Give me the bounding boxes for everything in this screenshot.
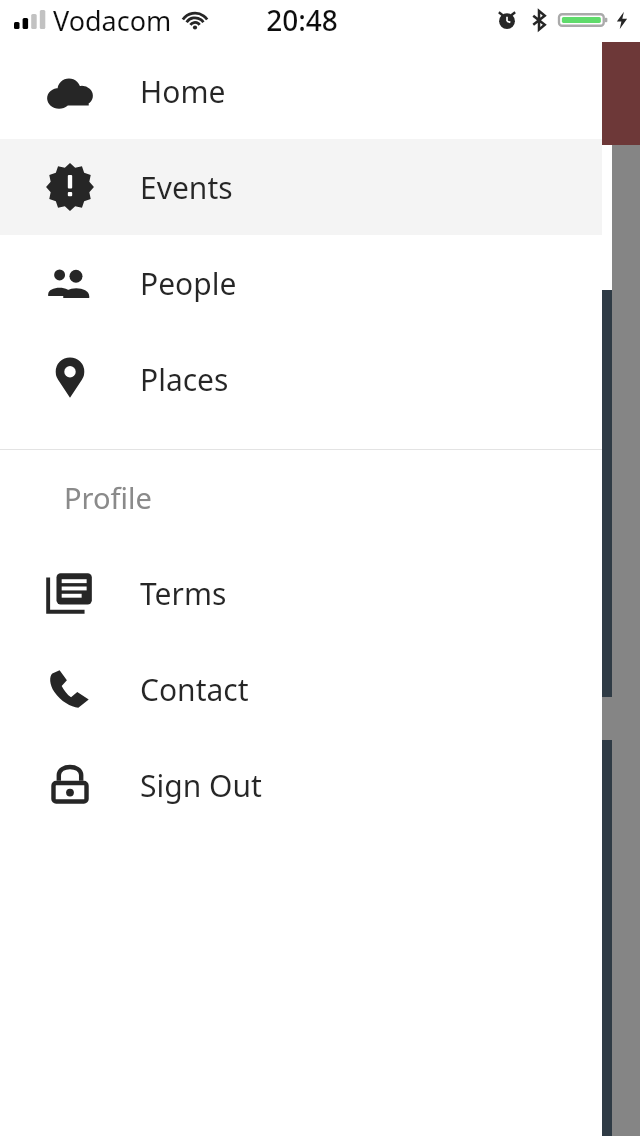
staticText: Terms — [140, 573, 227, 614]
staticText: Profile — [64, 478, 152, 517]
staticText: Vodacom — [53, 2, 172, 39]
button[interactable]: Places — [0, 331, 602, 427]
button[interactable]: Sign Out — [0, 737, 602, 833]
button[interactable]: People — [0, 235, 602, 331]
button[interactable]: Events — [0, 139, 602, 235]
staticText: Places — [140, 359, 229, 400]
staticText: Sign Out — [140, 765, 262, 806]
staticText: Events — [140, 167, 233, 208]
staticText: Contact — [140, 669, 249, 710]
button[interactable]: Terms — [0, 545, 602, 641]
button[interactable]: Home — [0, 43, 602, 139]
staticText: Home — [140, 71, 226, 112]
staticText: People — [140, 263, 237, 304]
staticText: 20:48 — [266, 1, 338, 39]
button[interactable]: Contact — [0, 641, 602, 737]
